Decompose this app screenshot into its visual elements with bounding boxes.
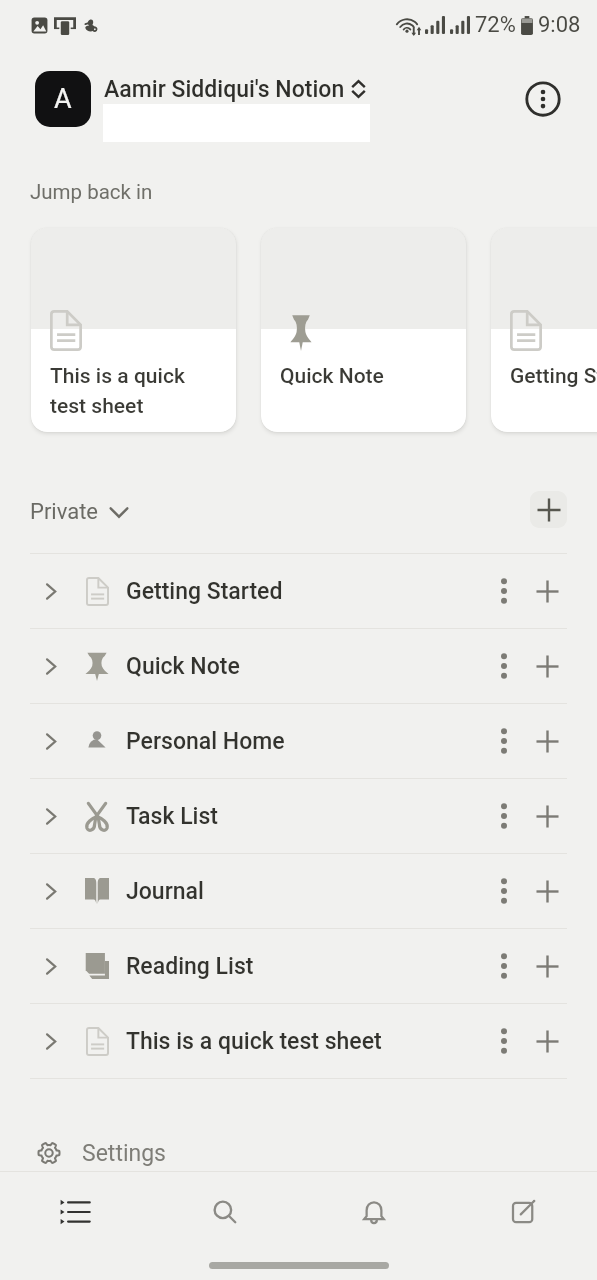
staticText: Personal Home (126, 728, 285, 755)
button[interactable]: Add page (530, 491, 567, 528)
button[interactable]: This is a quick test sheet (31, 228, 236, 432)
button[interactable]: Add subpage (525, 1019, 569, 1063)
staticText: Aamir Siddiqui's Notion (104, 76, 345, 103)
button[interactable]: Reading List (0, 929, 597, 1003)
staticText: Journal (126, 878, 204, 905)
button[interactable]: New page (448, 1172, 597, 1251)
button[interactable]: Add subpage (525, 944, 569, 988)
staticText: Reading List (126, 953, 254, 980)
staticText: Settings (82, 1140, 166, 1167)
staticText: A (54, 83, 72, 115)
button[interactable]: Getting Started (0, 554, 597, 628)
staticText: Task List (126, 803, 219, 830)
button[interactable]: Options (482, 644, 526, 688)
button[interactable]: Add subpage (525, 644, 569, 688)
button[interactable]: Notifications (299, 1172, 448, 1251)
staticText: 9:08 (538, 12, 581, 38)
staticText: Getting Started (126, 578, 283, 605)
button[interactable]: Quick Note (0, 629, 597, 703)
staticText: Quick Note (126, 653, 240, 680)
button[interactable]: Workspace avatar (35, 71, 91, 127)
staticText: Quick Note (280, 364, 462, 389)
button[interactable]: Add subpage (525, 719, 569, 763)
staticText: This is a quick test sheet (50, 364, 232, 418)
button[interactable]: Options (482, 1019, 526, 1063)
staticText: Private (30, 499, 99, 525)
button[interactable]: This is a quick test sheet (0, 1004, 597, 1078)
button[interactable]: Options (482, 569, 526, 613)
button[interactable]: Add subpage (525, 869, 569, 913)
button[interactable]: Add subpage (525, 794, 569, 838)
button[interactable]: Personal Home (0, 704, 597, 778)
button[interactable]: Task List (0, 779, 597, 853)
button[interactable]: Search (150, 1172, 299, 1251)
button[interactable]: Journal (0, 854, 597, 928)
button[interactable]: Quick Note (261, 228, 466, 432)
button[interactable]: Options (482, 869, 526, 913)
button[interactable]: Add subpage (525, 569, 569, 613)
button[interactable]: Private (30, 497, 130, 527)
staticText: Getting Started (510, 364, 597, 389)
button[interactable]: More options (521, 77, 565, 121)
button[interactable]: Options (482, 794, 526, 838)
button[interactable]: Settings (0, 1124, 597, 1182)
button[interactable]: Options (482, 944, 526, 988)
button[interactable]: Options (482, 719, 526, 763)
staticText: 72% (475, 12, 516, 38)
staticText: Jump back in (30, 180, 153, 204)
staticText: This is a quick test sheet (126, 1028, 382, 1055)
button[interactable]: Pages (0, 1172, 150, 1251)
button[interactable]: Aamir Siddiqui's Notion (104, 74, 366, 104)
button[interactable]: Getting Started (491, 228, 597, 432)
